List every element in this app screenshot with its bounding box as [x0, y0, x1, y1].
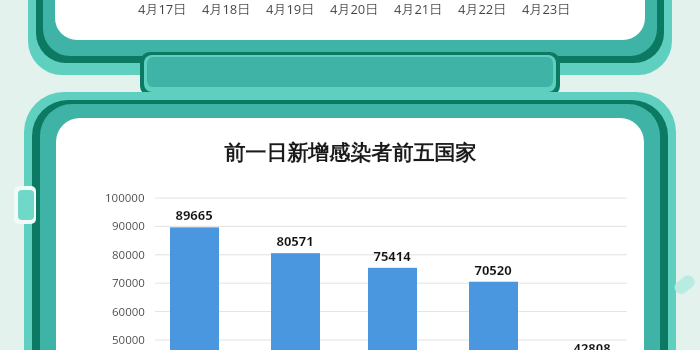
button[interactable]: COVID-19 infographic chart — [0, 0, 700, 350]
